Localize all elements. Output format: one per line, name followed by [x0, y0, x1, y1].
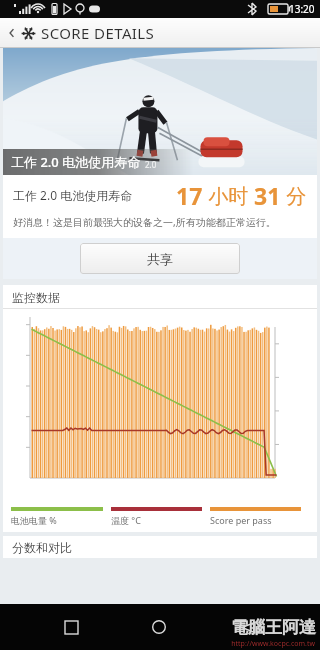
- staticText: 2.0: [145, 159, 157, 170]
- staticText: 13:20: [289, 2, 315, 16]
- button[interactable]: Back: [3, 24, 21, 42]
- button[interactable]: Recents: [54, 610, 88, 644]
- staticText: 电池电量 %: [11, 514, 57, 526]
- staticText: 温度 °C: [111, 514, 141, 526]
- staticText: 工作 2.0 电池使用寿命: [13, 187, 133, 203]
- staticText: 工作 2.0 电池使用寿命: [11, 153, 141, 171]
- staticText: 监控数据: [12, 290, 60, 305]
- button[interactable]: Home: [142, 610, 176, 644]
- staticText: 31: [254, 180, 281, 211]
- button[interactable]: 共享: [80, 243, 240, 274]
- staticText: 共享: [147, 251, 173, 267]
- staticText: 分数和对比: [12, 540, 72, 555]
- staticText: 小时: [203, 182, 254, 209]
- staticText: Score per pass: [210, 514, 272, 526]
- staticText: SCORE DETAILS: [41, 23, 155, 43]
- staticText: 好消息！这是目前最强大的设备之一,所有功能都正常运行。: [13, 215, 311, 229]
- staticText: 分: [281, 182, 307, 209]
- button[interactable]: Back: [231, 610, 265, 644]
- staticText: http://www.kocpc.com.tw: [231, 639, 315, 649]
- staticText: 17: [176, 180, 203, 211]
- staticText: 電腦王阿達: [231, 617, 316, 638]
